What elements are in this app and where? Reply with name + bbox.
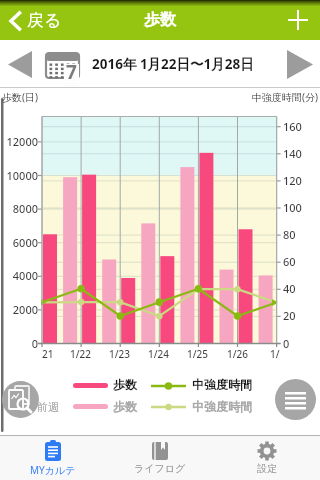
- staticText: 2016年 1月22日〜1月28日: [92, 55, 254, 73]
- staticText: MYカルテ: [30, 463, 76, 477]
- button[interactable]: [284, 6, 312, 34]
- staticText: 歩数: [113, 377, 137, 392]
- staticText: 140: [283, 146, 302, 161]
- staticText: 160: [283, 119, 302, 134]
- staticText: 設定: [257, 462, 277, 475]
- staticText: 1/22: [70, 347, 92, 361]
- staticText: 前週: [37, 400, 59, 414]
- staticText: 中強度時間(分): [252, 90, 318, 104]
- staticText: 0: [31, 336, 38, 351]
- staticText: 1/26: [227, 347, 249, 361]
- staticText: 1/24: [148, 347, 170, 361]
- button[interactable]: [275, 379, 316, 420]
- staticText: 中強度時間: [192, 377, 252, 392]
- button[interactable]: [284, 48, 316, 80]
- staticText: 40: [283, 281, 296, 296]
- staticText: 80: [283, 227, 296, 242]
- button[interactable]: [2, 381, 39, 418]
- staticText: 21: [42, 347, 54, 361]
- staticText: 100: [283, 200, 302, 215]
- staticText: 1/23: [109, 347, 131, 361]
- staticText: 0: [283, 336, 290, 351]
- staticText: 6000: [12, 235, 38, 250]
- staticText: 歩数(日): [2, 90, 38, 104]
- staticText: ライフログ: [134, 462, 186, 475]
- staticText: 8000: [12, 201, 38, 216]
- staticText: 1/: [270, 347, 280, 361]
- staticText: 4000: [12, 268, 38, 283]
- staticText: 10000: [6, 168, 38, 183]
- button[interactable]: ライフログ: [106, 436, 213, 480]
- staticText: 1/25: [187, 347, 209, 361]
- staticText: 中強度時間: [192, 399, 252, 414]
- staticText: 7: [66, 59, 77, 85]
- staticText: 2000: [12, 302, 38, 317]
- staticText: 歩数: [113, 399, 137, 414]
- button[interactable]: 設定: [213, 436, 320, 480]
- button[interactable]: MYカルテ: [0, 436, 106, 480]
- staticText: 120: [283, 173, 302, 188]
- button[interactable]: 戻る: [6, 8, 64, 33]
- staticText: 60: [283, 254, 296, 269]
- staticText: 20: [283, 308, 296, 323]
- button[interactable]: [4, 48, 36, 80]
- button[interactable]: 7: [42, 48, 84, 88]
- staticText: 歩数: [144, 10, 176, 30]
- staticText: 戻る: [27, 10, 62, 31]
- staticText: 12000: [6, 134, 38, 149]
